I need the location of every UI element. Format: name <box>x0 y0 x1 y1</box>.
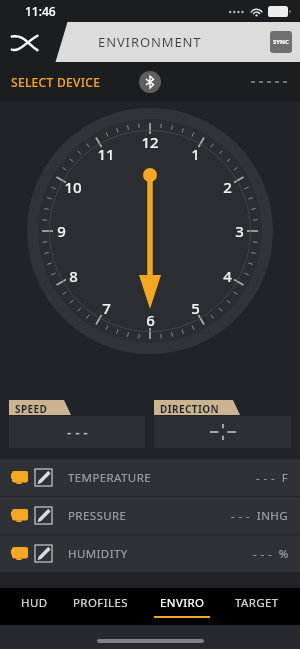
staticText: 1 <box>191 144 200 164</box>
staticText: SYNC <box>273 38 289 46</box>
button[interactable]: Edit TEMPERATURE <box>0 459 300 496</box>
staticText: HUD <box>21 595 48 611</box>
button[interactable]: HUD <box>16 588 53 625</box>
button[interactable]: Edit HUMIDITY <box>0 535 300 572</box>
staticText: 9 <box>57 221 66 241</box>
staticText: PROFILES <box>73 595 128 611</box>
staticText: ENVIRO <box>160 595 205 611</box>
button[interactable]: Edit PRESSURE <box>35 507 52 524</box>
button[interactable]: DIRECTION <box>154 400 291 448</box>
staticText: ENVIRONMENT <box>98 33 202 51</box>
button[interactable]: Sync <box>270 31 292 53</box>
staticText: 4 <box>223 266 232 286</box>
staticText: DIRECTION <box>160 402 220 416</box>
staticText: TARGET <box>235 595 279 611</box>
staticText: - - - % <box>253 546 289 562</box>
staticText: 3 <box>235 221 244 241</box>
staticText: HUMIDITY <box>68 546 128 562</box>
button[interactable]: ENVIRO <box>149 588 215 625</box>
staticText: - - - F <box>256 470 289 486</box>
staticText: SPEED <box>15 402 48 416</box>
button[interactable]: SELECT DEVICE <box>11 74 101 90</box>
staticText: - - - <box>67 423 88 442</box>
button[interactable]: Bluetooth <box>139 71 161 93</box>
staticText: 7 <box>102 298 111 318</box>
button[interactable]: Edit PRESSURE <box>0 497 300 534</box>
staticText: 8 <box>69 266 78 286</box>
staticText: 6 <box>146 310 155 330</box>
staticText: TEMPERATURE <box>68 470 152 486</box>
button[interactable]: SPEED <box>9 400 145 448</box>
staticText: 11:46 <box>25 3 56 19</box>
staticText: - - - INHG <box>231 508 289 524</box>
staticText: 5 <box>191 298 200 318</box>
staticText: 2 <box>223 177 232 197</box>
staticText: PRESSURE <box>68 508 127 524</box>
staticText: 12 <box>141 132 159 152</box>
staticText: 10 <box>64 177 82 197</box>
button[interactable]: TARGET <box>230 588 284 625</box>
staticText: 11 <box>97 144 115 164</box>
button[interactable]: PROFILES <box>68 588 133 625</box>
button[interactable]: Edit TEMPERATURE <box>35 469 52 486</box>
button[interactable]: Edit HUMIDITY <box>35 545 52 562</box>
button[interactable]: Menu <box>6 24 42 60</box>
